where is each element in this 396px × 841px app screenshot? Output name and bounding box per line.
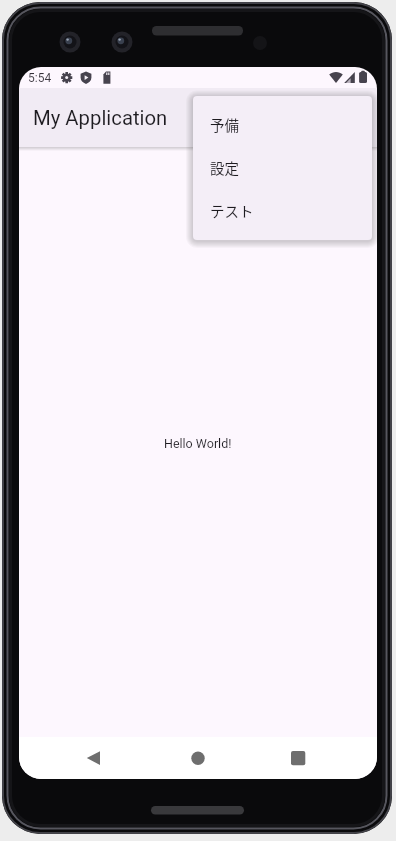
button[interactable] [182,742,214,774]
button[interactable]: 設定 [193,146,372,189]
staticText: 予備 [210,114,239,135]
staticText: テスト [210,200,254,221]
staticText: 設定 [210,157,239,178]
button[interactable] [282,742,314,774]
staticText: My Application [33,106,168,130]
button[interactable]: テスト [193,189,372,232]
button[interactable]: 予備 [193,103,372,146]
staticText: Hello World! [164,436,232,451]
staticText: 5:54 [28,71,52,85]
button[interactable] [77,742,109,774]
